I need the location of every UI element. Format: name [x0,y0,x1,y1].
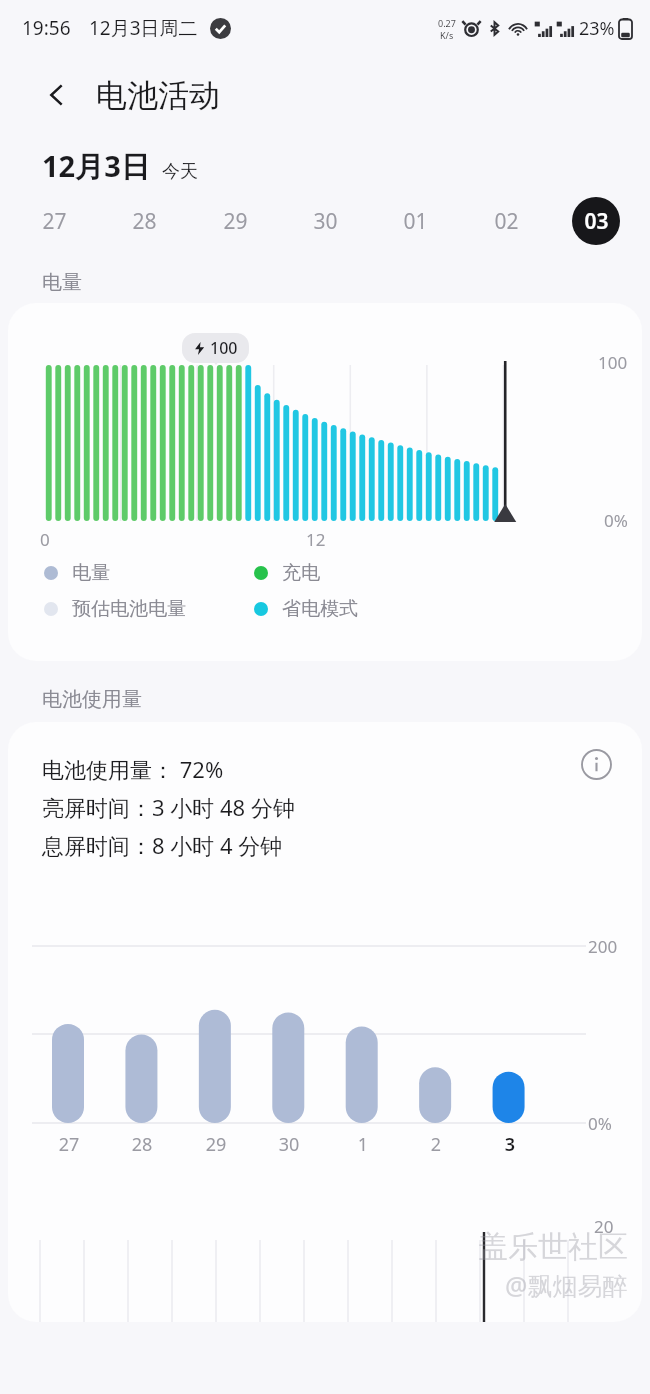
staticText: 30 [277,1132,301,1157]
staticText: 电量 [42,270,82,295]
staticText: 充电 [282,561,320,585]
staticText: 28 [130,1132,154,1157]
staticText: 0% [588,1112,612,1135]
staticText: 100 [210,337,238,359]
staticText: 省电模式 [282,597,358,621]
button[interactable]: 30 [301,197,349,245]
staticText: 12 [306,528,326,551]
staticText: 2 [424,1132,448,1157]
staticText: 电池活动 [96,76,220,115]
staticText: 30 [313,207,338,236]
staticText: 20 [594,1215,614,1238]
staticText: 0% [604,509,628,532]
staticText: 02 [494,207,519,236]
staticText: 200 [588,935,618,958]
button[interactable]: 28 [120,197,168,245]
button[interactable]: 27 [30,197,78,245]
staticText: 电池使用量： 72% [42,754,224,784]
button[interactable]: 29 [211,197,259,245]
button[interactable]: 02 [482,197,530,245]
staticText: 23% [579,16,615,41]
staticText: 28 [132,207,157,236]
staticText: 19:56 [22,15,71,41]
button[interactable]: 03 [572,197,620,245]
staticText: 息屏时间：8 小时 4 分钟 [42,830,283,860]
button[interactable]: 100 [8,303,642,661]
staticText: @飘烟易醉 [505,1268,628,1302]
staticText: 03 [584,207,609,236]
staticText: 27 [57,1132,81,1157]
staticText: 29 [223,207,248,236]
staticText: 电池使用量 [42,687,142,712]
staticText: 12月3日 [42,146,150,186]
button[interactable]: 信息 [576,744,616,784]
staticText: K/s [440,29,454,41]
staticText: 29 [204,1132,228,1157]
button[interactable]: 01 [391,197,439,245]
staticText: 0 [40,528,50,551]
staticText: 亮屏时间：3 小时 48 分钟 [42,792,295,822]
staticText: 预估电池电量 [72,597,186,621]
staticText: 0.27 [438,17,456,29]
staticText: 电量 [72,561,110,585]
staticText: 1 [351,1132,375,1157]
staticText: 3 [498,1132,522,1157]
staticText: 今天 [162,160,198,183]
button[interactable]: 返回 [34,72,80,118]
staticText: 盖乐世社区 [478,1228,628,1266]
staticText: 100 [598,351,628,374]
staticText: 27 [42,207,67,236]
staticText: 01 [403,207,428,236]
staticText: 12月3日周二 [89,15,198,41]
